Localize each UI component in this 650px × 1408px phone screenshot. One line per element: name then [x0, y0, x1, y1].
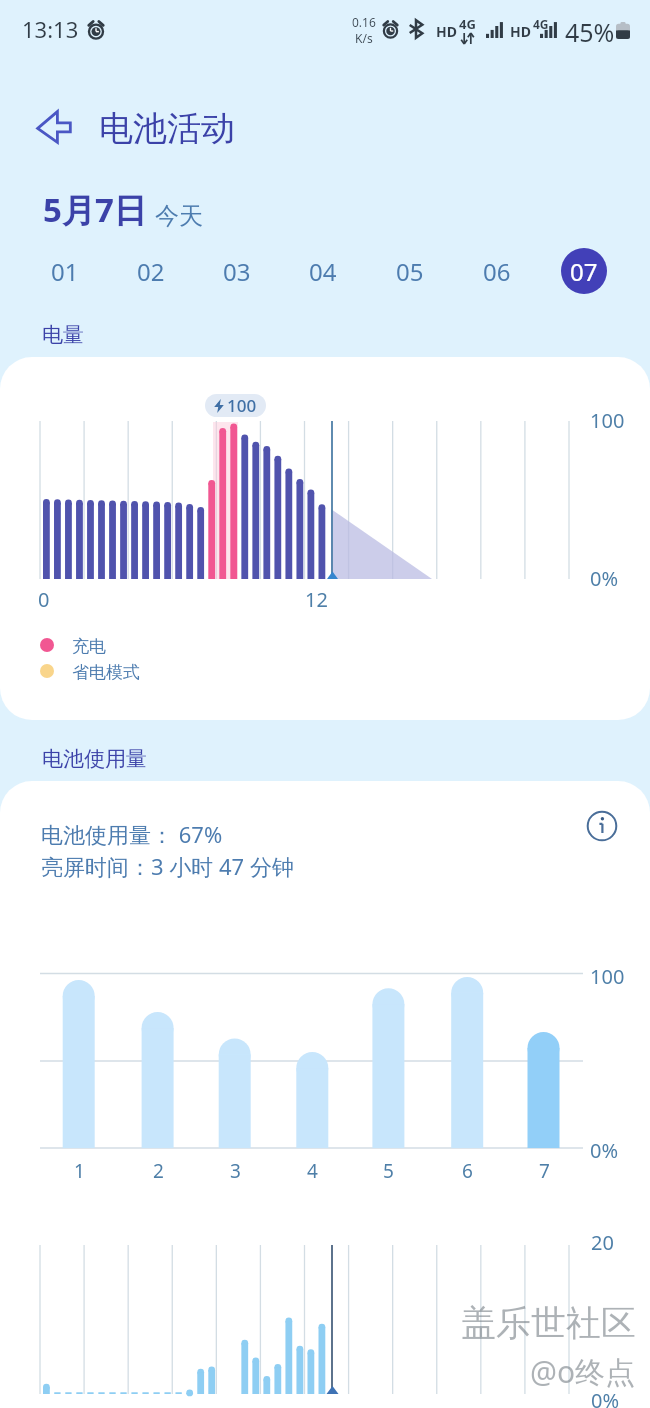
staticText: 3	[230, 1158, 241, 1184]
staticText: 0	[38, 586, 50, 613]
staticText: 100	[590, 407, 625, 434]
staticText: 05	[396, 255, 424, 288]
button[interactable]: 04	[300, 248, 346, 294]
button[interactable]: 03	[214, 248, 260, 294]
staticText: 4G	[533, 16, 549, 32]
staticText: 5月7日	[43, 187, 147, 232]
staticText: 省电模式	[72, 662, 140, 683]
staticText: 03	[223, 255, 251, 288]
button[interactable]: 07	[561, 248, 607, 294]
button[interactable]: 01	[42, 248, 88, 294]
staticText: 电池使用量	[42, 746, 147, 772]
staticText: 盖乐世社区	[461, 1301, 636, 1345]
staticText: 0.16	[352, 14, 376, 30]
staticText: 04	[309, 255, 337, 288]
button[interactable]: 06	[474, 248, 520, 294]
staticText: 亮屏时间：3 小时 47 分钟	[41, 851, 294, 881]
staticText: 06	[483, 255, 511, 288]
staticText: 电池活动	[99, 107, 235, 150]
staticText: 今天	[155, 201, 203, 231]
staticText: 07	[570, 255, 598, 288]
staticText: 4	[307, 1158, 318, 1184]
staticText: 0%	[590, 1137, 619, 1164]
staticText: 45%	[565, 15, 615, 49]
staticText: 4G	[459, 15, 476, 33]
staticText: 1	[74, 1158, 85, 1184]
staticText: 电池使用量： 67%	[41, 819, 223, 849]
staticText: @o终点	[530, 1351, 636, 1392]
button[interactable]: 信息	[582, 806, 622, 846]
staticText: 100	[590, 963, 625, 990]
staticText: 12	[305, 586, 328, 613]
staticText: 6	[462, 1158, 473, 1184]
staticText: 02	[137, 255, 165, 288]
staticText: 电量	[42, 322, 84, 348]
staticText: HD	[510, 22, 531, 41]
staticText: HD	[436, 22, 457, 41]
staticText: 0%	[591, 1387, 620, 1408]
button[interactable]: 返回	[30, 104, 78, 150]
staticText: 20	[591, 1229, 614, 1256]
staticText: 13:13	[22, 14, 79, 44]
staticText: 充电	[72, 636, 106, 657]
staticText: 100	[227, 394, 257, 417]
button[interactable]: 05	[387, 248, 433, 294]
staticText: 0%	[590, 565, 619, 592]
staticText: 01	[51, 255, 79, 288]
staticText: 2	[153, 1158, 164, 1184]
staticText: K/s	[355, 30, 373, 46]
staticText: 5	[383, 1158, 394, 1184]
staticText: 7	[539, 1158, 550, 1184]
button[interactable]: 02	[128, 248, 174, 294]
